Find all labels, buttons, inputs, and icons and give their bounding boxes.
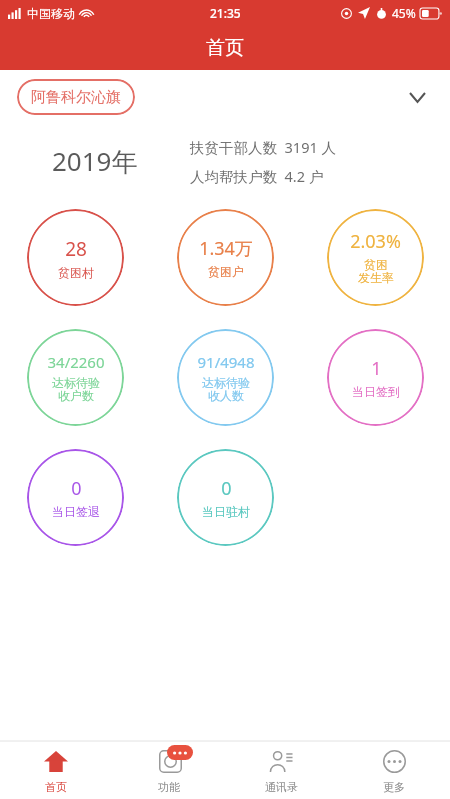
staticText: 1.34万: [199, 236, 253, 261]
staticText: 91/4948: [197, 352, 255, 372]
staticText: 贫困 发生率: [358, 257, 394, 286]
staticText: 当日驻村: [202, 504, 250, 519]
button[interactable]: 阿鲁科尔沁旗: [17, 79, 135, 115]
button[interactable]: 0: [27, 449, 124, 546]
staticText: 2.03%: [350, 229, 401, 254]
staticText: 当日签退: [52, 504, 100, 519]
staticText: 首页: [206, 36, 244, 60]
button[interactable]: 1.34万: [177, 209, 274, 306]
button[interactable]: More: [338, 741, 450, 799]
button[interactable]: Expand: [402, 82, 432, 112]
staticText: 2019年: [52, 143, 138, 179]
button[interactable]: 1: [327, 329, 424, 426]
button[interactable]: 2.03%: [327, 209, 424, 306]
staticText: 28: [65, 236, 87, 262]
button[interactable]: 0: [177, 449, 274, 546]
staticText: 贫困村: [58, 265, 94, 280]
staticText: 0: [71, 476, 82, 501]
staticText: 中国移动: [27, 6, 75, 21]
staticText: 更多: [383, 780, 405, 794]
staticText: 21:35: [210, 5, 241, 21]
staticText: 0: [221, 476, 232, 501]
staticText: 1: [371, 356, 382, 381]
staticText: 当日签到: [352, 384, 400, 399]
staticText: 人均帮扶户数 4.2 户: [190, 166, 324, 186]
button[interactable]: 34/2260: [27, 329, 124, 426]
button[interactable]: Home: [0, 741, 112, 799]
button[interactable]: Functions: [113, 741, 225, 799]
staticText: 达标待验 收人数: [202, 375, 250, 404]
button[interactable]: 91/4948: [177, 329, 274, 426]
button[interactable]: Contacts: [225, 741, 337, 799]
staticText: 功能: [158, 780, 180, 794]
staticText: 首页: [45, 780, 67, 794]
staticText: 达标待验 收户数: [52, 375, 100, 404]
staticText: 34/2260: [47, 352, 105, 372]
staticText: 贫困户: [208, 264, 244, 279]
staticText: 阿鲁科尔沁旗: [31, 88, 121, 107]
staticText: 通讯录: [265, 780, 298, 794]
button[interactable]: 28: [27, 209, 124, 306]
staticText: 45%: [392, 5, 416, 21]
staticText: 扶贫干部人数 3191 人: [190, 137, 336, 157]
